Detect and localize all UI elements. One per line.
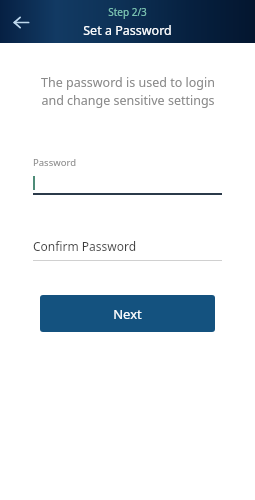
button[interactable]: Confirm Password bbox=[33, 238, 222, 261]
staticText: Next bbox=[113, 305, 142, 323]
button[interactable]: Password bbox=[33, 156, 222, 195]
staticText: Step 2/3 bbox=[108, 5, 147, 19]
staticText: Password bbox=[33, 156, 76, 169]
staticText: The password is used to login and change… bbox=[41, 74, 215, 109]
staticText: Confirm Password bbox=[33, 238, 137, 254]
staticText: Set a Password bbox=[83, 22, 172, 39]
button[interactable]: Next bbox=[40, 295, 215, 332]
button[interactable]: Back bbox=[6, 7, 36, 37]
